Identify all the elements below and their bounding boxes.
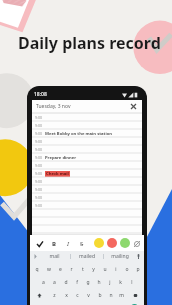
staticText: m (119, 292, 124, 299)
staticText: 9:00 (35, 187, 42, 192)
button[interactable]: S (76, 238, 87, 249)
button[interactable]: Tuesday, 3 nov (32, 100, 142, 113)
button[interactable]: m (116, 290, 127, 301)
staticText: 9:00 (35, 171, 42, 176)
button[interactable]: v (83, 290, 94, 301)
button[interactable]: y (88, 264, 99, 275)
button[interactable]: a (38, 277, 49, 288)
button[interactable]: n (105, 290, 116, 301)
button[interactable]: 9:00 (32, 178, 142, 185)
button[interactable]: I (62, 238, 73, 249)
staticText: 9:00 (35, 115, 42, 120)
button[interactable]: 9:00 (32, 202, 142, 209)
button[interactable]: w (43, 264, 55, 275)
staticText: 9:00 (35, 179, 42, 184)
staticText: 18:08 (34, 91, 47, 98)
button[interactable] (32, 218, 142, 225)
button[interactable]: h (93, 277, 104, 288)
staticText: j (109, 279, 111, 286)
staticText: b (98, 292, 102, 299)
staticText: a (42, 279, 45, 286)
staticText: i (115, 266, 117, 273)
button[interactable]: Backspace (127, 290, 143, 301)
staticText: g (86, 279, 90, 286)
button[interactable]: 9:00 (32, 130, 142, 137)
staticText: w (47, 266, 51, 273)
staticText: c (76, 292, 79, 299)
button[interactable]: Shift (31, 290, 48, 301)
button[interactable]: j (104, 277, 115, 288)
button[interactable]: mail (38, 251, 70, 262)
button[interactable]: a (49, 277, 60, 288)
button[interactable]: Close (129, 102, 138, 111)
button[interactable]: p (132, 264, 143, 275)
button[interactable]: q (31, 264, 43, 275)
button[interactable]: d (60, 277, 71, 288)
button[interactable]: 9:00 (32, 170, 142, 177)
button[interactable]: More (33, 254, 38, 259)
button[interactable]: 9:00 (32, 114, 142, 121)
staticText: 9:00 (35, 155, 42, 160)
button[interactable]: B (48, 238, 59, 249)
staticText: I (67, 240, 69, 248)
button[interactable]: k (115, 277, 126, 288)
staticText: Prepare dinner (45, 155, 77, 161)
staticText: B (52, 240, 56, 248)
button[interactable]: r (66, 264, 77, 275)
staticText: mailing (111, 253, 129, 260)
button[interactable]: Highlight colour (120, 238, 130, 248)
staticText: q (35, 266, 39, 273)
button[interactable]: g (82, 277, 93, 288)
staticText: l (131, 279, 133, 286)
button[interactable]: Highlight colour (94, 238, 104, 248)
staticText: mail (49, 253, 60, 260)
button[interactable] (32, 210, 142, 217)
button[interactable]: Enter (130, 304, 139, 305)
button[interactable]: 9:00 (32, 154, 142, 161)
staticText: d (64, 279, 68, 286)
staticText: 9:00 (35, 195, 42, 200)
button[interactable]: 9:00 (32, 194, 142, 201)
button[interactable]: mailed (71, 251, 103, 262)
button[interactable]: 9:00 (32, 122, 142, 129)
button[interactable]: b (94, 290, 105, 301)
button[interactable]: mailing (104, 251, 136, 262)
button[interactable]: i (110, 264, 121, 275)
staticText: y (92, 266, 95, 273)
button[interactable]: Erase formatting (133, 238, 140, 249)
staticText: z (53, 292, 56, 299)
staticText: k (119, 279, 122, 286)
staticText: Daily plans record (18, 32, 161, 54)
button[interactable]: o (121, 264, 132, 275)
button[interactable]: e (55, 264, 66, 275)
button[interactable]: Checklist (34, 238, 45, 249)
button[interactable]: c (72, 290, 83, 301)
button[interactable]: 9:00 (32, 186, 142, 193)
staticText: t (82, 266, 84, 273)
button[interactable]: l (126, 277, 137, 288)
button[interactable]: 9:00 (32, 138, 142, 145)
button[interactable]: Highlight colour (107, 238, 117, 248)
staticText: 9:00 (35, 123, 42, 128)
button[interactable] (32, 226, 142, 233)
staticText: u (103, 266, 107, 273)
staticText: n (109, 292, 113, 299)
button[interactable]: t (77, 264, 88, 275)
staticText: e (59, 266, 62, 273)
staticText: 9:00 (35, 163, 42, 168)
button[interactable]: x (60, 290, 72, 301)
staticText: 9:00 (35, 147, 42, 152)
button[interactable]: f (71, 277, 82, 288)
staticText: mailed (79, 253, 95, 260)
button[interactable]: u (99, 264, 110, 275)
button[interactable]: Voice input (136, 254, 141, 259)
button[interactable]: 9:00 (32, 146, 142, 153)
button[interactable]: 9:00 (32, 162, 142, 169)
button[interactable]: z (48, 290, 60, 301)
